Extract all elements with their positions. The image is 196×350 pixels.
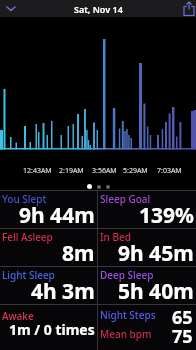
staticText: 9h 45m bbox=[118, 239, 194, 268]
staticText: 4h 3m bbox=[31, 277, 95, 306]
staticText: Mean bpm bbox=[100, 327, 152, 341]
staticText: 3:56AM bbox=[92, 166, 117, 176]
button[interactable]: Mean bpm bbox=[98, 324, 196, 343]
staticText: 7:03AM bbox=[157, 166, 182, 176]
staticText: 2:19AM bbox=[59, 166, 84, 176]
staticText: Night Steps bbox=[100, 308, 156, 322]
staticText: 75 bbox=[172, 324, 193, 343]
button[interactable] bbox=[174, 0, 196, 17]
button[interactable]: Fell Asleep bbox=[0, 229, 97, 266]
button[interactable]: In Bed bbox=[98, 229, 196, 266]
staticText: Light Sleep bbox=[2, 268, 55, 282]
button[interactable]: Night Steps bbox=[98, 305, 196, 324]
staticText: Deep Sleep bbox=[100, 268, 154, 282]
staticText: 139% bbox=[139, 201, 194, 230]
button[interactable]: Light Sleep bbox=[0, 267, 97, 304]
staticText: Sat, Nov 14 bbox=[74, 3, 123, 15]
button[interactable]: Deep Sleep bbox=[98, 267, 196, 304]
button[interactable]: Sleep Goal bbox=[98, 191, 196, 228]
staticText: 5:29AM bbox=[123, 166, 148, 176]
staticText: In Bed bbox=[100, 230, 131, 244]
staticText: Awake bbox=[2, 309, 34, 323]
staticText: You Slept bbox=[2, 192, 47, 206]
staticText: 12:43AM bbox=[23, 166, 52, 176]
staticText: 65 bbox=[172, 305, 193, 324]
staticText: 1m / 0 times bbox=[9, 320, 95, 339]
staticText: 5h 40m bbox=[118, 277, 194, 306]
staticText: Fell Asleep bbox=[2, 230, 53, 244]
staticText: 9h 44m bbox=[19, 201, 95, 230]
button[interactable] bbox=[0, 0, 22, 17]
staticText: Sleep Goal bbox=[100, 192, 151, 206]
staticText: 8m bbox=[62, 239, 95, 268]
button[interactable]: Awake bbox=[0, 305, 97, 350]
button[interactable]: You Slept bbox=[0, 191, 97, 228]
